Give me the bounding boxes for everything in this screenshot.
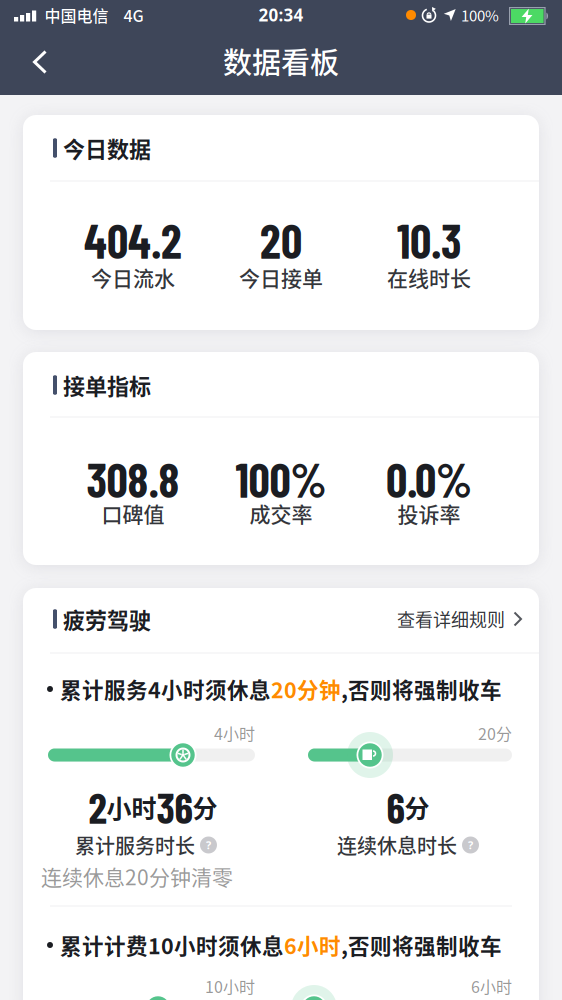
staticText: 404.2 <box>84 212 182 268</box>
button[interactable]: 累计服务时长说明 <box>200 836 217 853</box>
staticText: ? <box>206 837 211 852</box>
staticText: 分 <box>404 789 429 825</box>
staticText: 20:34 <box>258 3 303 27</box>
staticText: 6小时 <box>471 974 512 998</box>
staticText: 连续休息20分钟清零 <box>41 861 233 891</box>
staticText: 6小时 <box>284 929 341 960</box>
staticText: 4小时 <box>214 721 255 745</box>
staticText: 口碑值 <box>101 498 164 528</box>
staticText: 今日接单 <box>239 262 323 292</box>
staticText: 查看详细规则 <box>397 606 505 632</box>
staticText: 6 <box>386 782 404 832</box>
staticText: 今日数据 <box>63 132 151 164</box>
staticText: 2 <box>88 782 106 832</box>
staticText: 0.0% <box>386 451 472 507</box>
staticText: 20分 <box>478 721 512 745</box>
staticText: 成交率 <box>249 498 312 528</box>
staticText: 20 <box>260 212 302 268</box>
staticText: 疲劳驾驶 <box>63 603 151 635</box>
staticText: 数据看板 <box>223 40 339 82</box>
staticText: 今日流水 <box>91 262 175 292</box>
staticText: 投诉率 <box>397 498 460 528</box>
staticText: 累计计费10小时须休息 <box>60 929 284 960</box>
button[interactable]: Back <box>19 41 60 82</box>
staticText: 分 <box>192 789 217 825</box>
staticText: 中国电信 <box>44 3 108 27</box>
staticText: 小时 <box>106 789 156 825</box>
staticText: 100% <box>235 451 326 507</box>
button[interactable]: 查看详细规则 <box>389 598 531 640</box>
staticText: 20分钟 <box>271 673 341 704</box>
staticText: 连续休息时长 <box>337 830 457 859</box>
staticText: 接单指标 <box>63 369 151 401</box>
staticText: 4G <box>123 3 143 27</box>
staticText: 累计服务时长 <box>75 830 195 859</box>
staticText: 36 <box>156 782 192 832</box>
staticText: 100% <box>461 4 499 26</box>
staticText: ? <box>468 837 473 852</box>
staticText: 累计服务4小时须休息 <box>60 673 271 704</box>
staticText: 10.3 <box>397 212 461 268</box>
button[interactable]: 连续休息时长说明 <box>462 836 479 853</box>
staticText: 308.8 <box>86 451 179 507</box>
staticText: 10小时 <box>205 974 255 998</box>
staticText: 在线时长 <box>387 262 471 292</box>
staticText: ,否则将强制收车 <box>341 673 502 704</box>
staticText: ,否则将强制收车 <box>341 929 502 960</box>
